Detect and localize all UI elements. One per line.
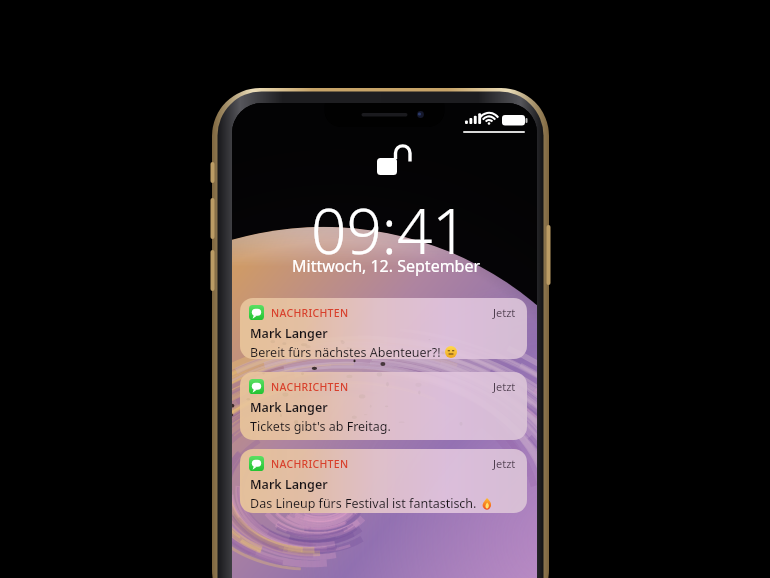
staticText: Tickets gibt's ab Freitag.	[250, 418, 391, 435]
button[interactable]: Messages app icon	[240, 372, 527, 440]
staticText: 09:41	[311, 188, 468, 272]
staticText: NACHRICHTEN	[271, 380, 349, 394]
staticText: NACHRICHTEN	[271, 457, 349, 471]
staticText: Mark Langer	[250, 476, 328, 493]
staticText: Mark Langer	[250, 325, 328, 342]
staticText: Jetzt	[493, 379, 516, 394]
other: Messages app icon	[249, 305, 264, 320]
staticText: Bereit fürs nächstes Abenteuer?!	[250, 344, 441, 359]
staticText: Jetzt	[493, 305, 516, 320]
staticText: Mittwoch, 12. September	[292, 255, 481, 277]
other: Messages app icon	[249, 456, 264, 471]
other: Messages app icon	[249, 379, 264, 394]
button[interactable]: Messages app icon	[240, 449, 527, 513]
staticText: Das Lineup fürs Festival ist fantastisch…	[250, 495, 477, 512]
staticText: Mark Langer	[250, 399, 328, 416]
button[interactable]: Messages app icon	[240, 298, 527, 359]
staticText: Jetzt	[493, 456, 516, 471]
staticText: NACHRICHTEN	[271, 306, 349, 320]
